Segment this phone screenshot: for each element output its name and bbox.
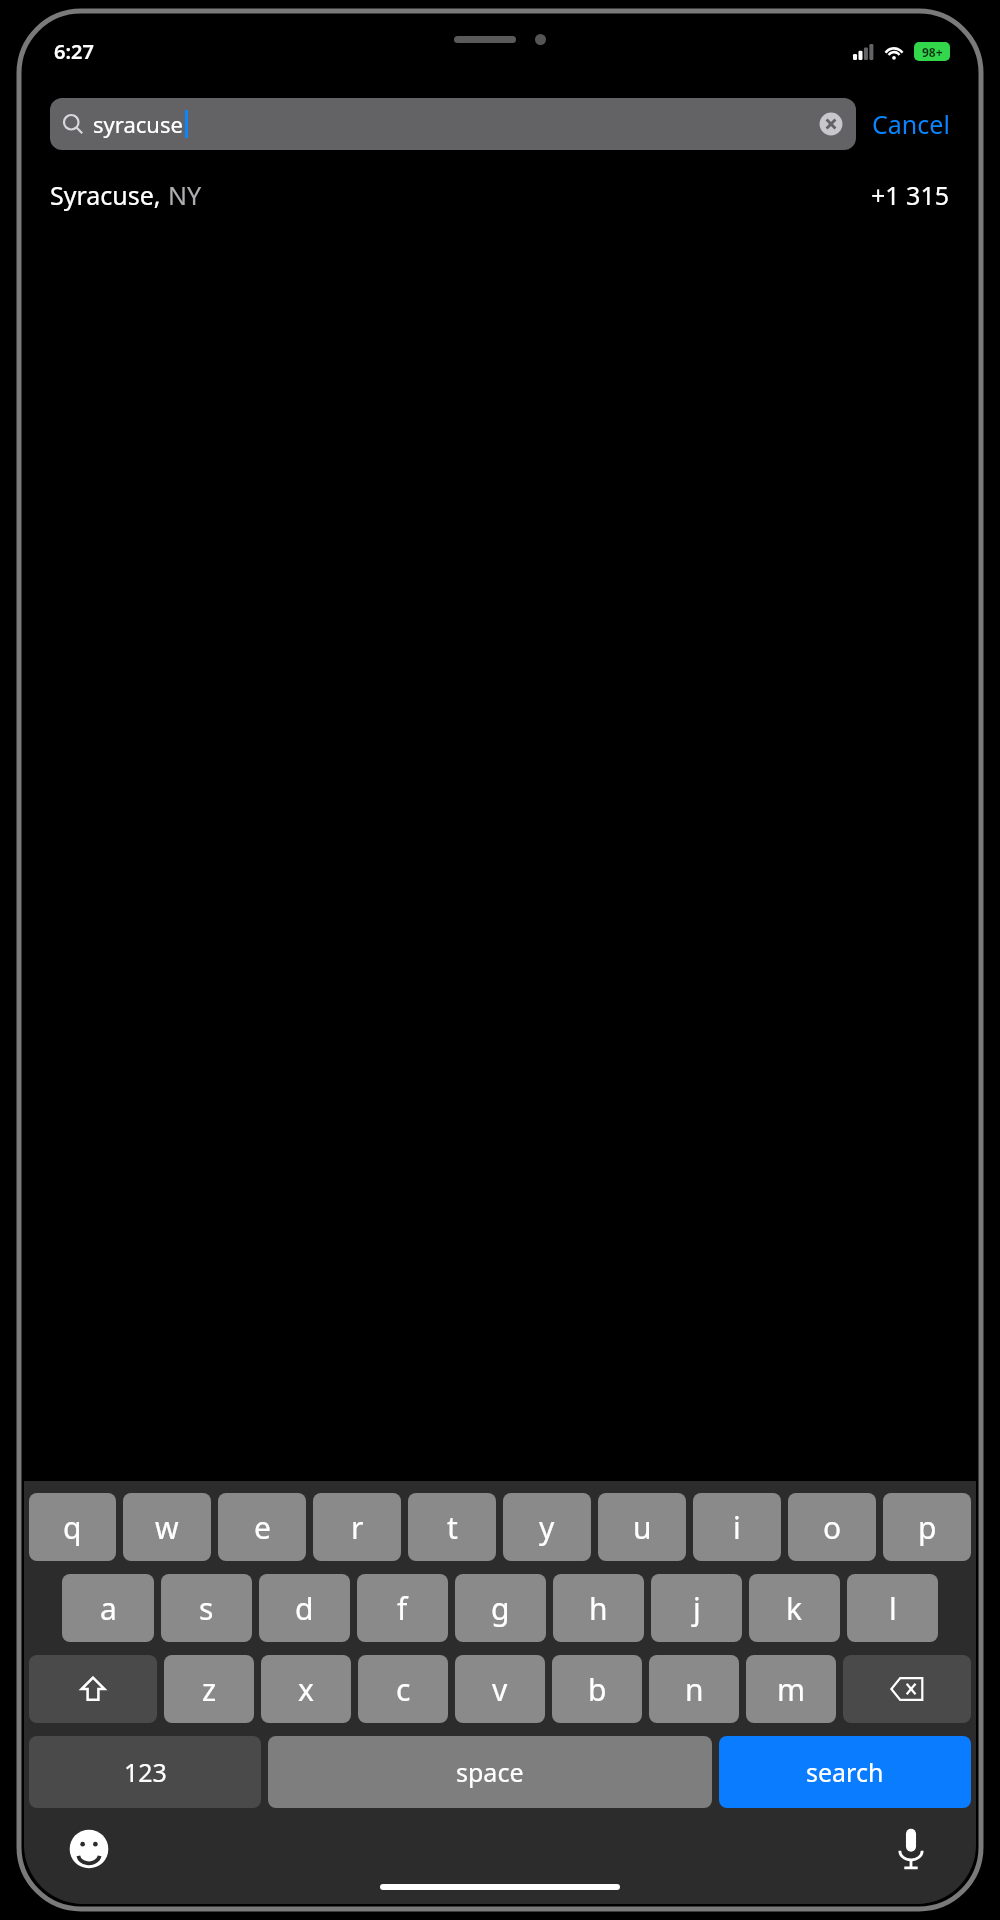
staticText: g [491,1588,510,1629]
staticText: w [155,1507,179,1548]
staticText: z [202,1669,217,1710]
button[interactable]: o [788,1493,876,1561]
staticText: q [63,1507,82,1548]
button[interactable]: b [552,1655,642,1723]
button[interactable]: Syracuse, [24,172,976,218]
staticText: n [685,1669,704,1710]
button[interactable]: t [408,1493,496,1561]
staticText: v [492,1669,508,1710]
button[interactable]: z [164,1655,254,1723]
staticText: i [733,1507,741,1548]
staticText: 123 [124,1755,167,1789]
staticText: d [295,1588,314,1629]
button[interactable]: f [357,1574,448,1642]
staticText: search [806,1755,884,1789]
staticText: r [351,1507,364,1548]
staticText: +1 315 [871,178,950,212]
staticText: Syracuse, [50,178,161,212]
button[interactable]: e [218,1493,306,1561]
button[interactable]: space [268,1736,712,1808]
staticText: Cancel [872,107,950,141]
staticText: u [633,1507,652,1548]
button[interactable]: r [313,1493,401,1561]
staticText: h [589,1588,608,1629]
button[interactable]: h [553,1574,644,1642]
staticText: j [693,1588,701,1629]
button[interactable]: y [503,1493,591,1561]
staticText: l [889,1588,897,1629]
button[interactable]: m [746,1655,836,1723]
staticText: syracuse [93,109,183,139]
button[interactable]: Emoji keyboard [64,1824,114,1874]
staticText: s [199,1588,214,1629]
button[interactable]: k [749,1574,840,1642]
button[interactable]: q [29,1493,116,1561]
staticText: p [918,1507,937,1548]
staticText: x [298,1669,314,1710]
button[interactable]: n [649,1655,739,1723]
staticText: t [447,1507,458,1548]
button[interactable]: v [455,1655,545,1723]
button[interactable]: u [598,1493,686,1561]
button[interactable]: Cancel [872,101,950,147]
staticText: b [588,1669,607,1710]
staticText: 98+ [922,44,943,60]
staticText: y [539,1507,555,1548]
button[interactable]: Voice input [886,1824,936,1874]
button[interactable]: x [261,1655,351,1723]
button[interactable]: d [259,1574,350,1642]
staticText: 6:27 [54,38,94,65]
button[interactable]: 123 [29,1736,261,1808]
staticText: space [456,1755,524,1789]
button[interactable]: g [455,1574,546,1642]
button[interactable]: search [719,1736,971,1808]
staticText: m [777,1669,806,1710]
button[interactable]: Backspace [843,1655,971,1723]
staticText: f [397,1588,408,1629]
button[interactable]: c [358,1655,448,1723]
button[interactable]: l [847,1574,938,1642]
button[interactable]: Clear text [818,111,844,137]
button[interactable]: p [883,1493,971,1561]
staticText: e [254,1507,271,1548]
button[interactable]: a [62,1574,154,1642]
button[interactable]: w [123,1493,211,1561]
button[interactable]: syracuse [50,98,856,150]
button[interactable]: s [161,1574,252,1642]
staticText: NY [168,178,202,212]
staticText: c [396,1669,411,1710]
button[interactable]: i [693,1493,781,1561]
staticText: a [100,1588,117,1629]
staticText: o [823,1507,842,1548]
button[interactable]: Shift [29,1655,157,1723]
staticText: k [786,1588,803,1629]
button[interactable]: j [651,1574,742,1642]
